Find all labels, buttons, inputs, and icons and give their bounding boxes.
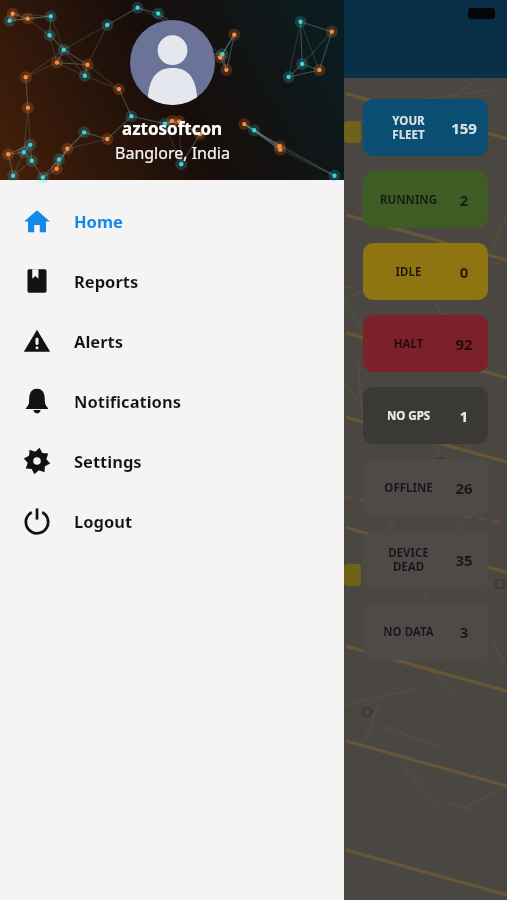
staticText: 3 — [448, 622, 480, 642]
button[interactable]: NO DATA — [363, 603, 488, 660]
button[interactable]: IDLE — [363, 243, 488, 300]
staticText: 92 — [448, 334, 480, 354]
staticText: Alerts — [74, 330, 124, 352]
other: Logout — [23, 507, 51, 535]
button[interactable]: NO GPS — [363, 387, 488, 444]
button[interactable]: Reports — [0, 251, 344, 311]
staticText: 2 — [448, 190, 480, 210]
button[interactable]: Home — [0, 191, 344, 251]
staticText: Notifications — [74, 390, 181, 412]
staticText: NO GPS — [369, 408, 448, 424]
staticText: 26 — [448, 478, 480, 498]
staticText: NO DATA — [369, 624, 448, 640]
staticText: 159 — [448, 118, 480, 138]
staticText: 1 — [448, 406, 480, 426]
button[interactable]: YOUR FLEET — [363, 99, 488, 156]
staticText: YOUR FLEET — [369, 113, 448, 142]
button[interactable]: HALT — [363, 315, 488, 372]
staticText: IDLE — [369, 264, 448, 280]
staticText: Reports — [74, 270, 139, 292]
button[interactable]: DEVICE DEAD — [363, 531, 488, 588]
button[interactable]: RUNNING — [363, 171, 488, 228]
staticText: 35 — [448, 550, 480, 570]
staticText: Home — [74, 210, 123, 232]
other: Alerts — [23, 327, 51, 355]
staticText: DEVICE DEAD — [369, 545, 448, 574]
button[interactable]: OFFLINE — [363, 459, 488, 516]
staticText: Settings — [74, 450, 142, 472]
button[interactable]: Settings — [0, 431, 344, 491]
staticText: RUNNING — [369, 192, 448, 208]
staticText: OFFLINE — [369, 480, 448, 496]
staticText: Banglore, India — [115, 142, 230, 164]
staticText: Logout — [74, 510, 133, 532]
other: Reports — [23, 267, 51, 295]
button[interactable]: Notifications — [0, 371, 344, 431]
staticText: aztosoftcon — [122, 117, 223, 140]
staticText: 0 — [448, 262, 480, 282]
button[interactable]: Logout — [0, 491, 344, 551]
staticText: HALT — [369, 336, 448, 352]
other: Settings — [23, 447, 51, 475]
other: Home — [23, 207, 51, 235]
other: Notifications — [23, 387, 51, 415]
button[interactable]: Alerts — [0, 311, 344, 371]
